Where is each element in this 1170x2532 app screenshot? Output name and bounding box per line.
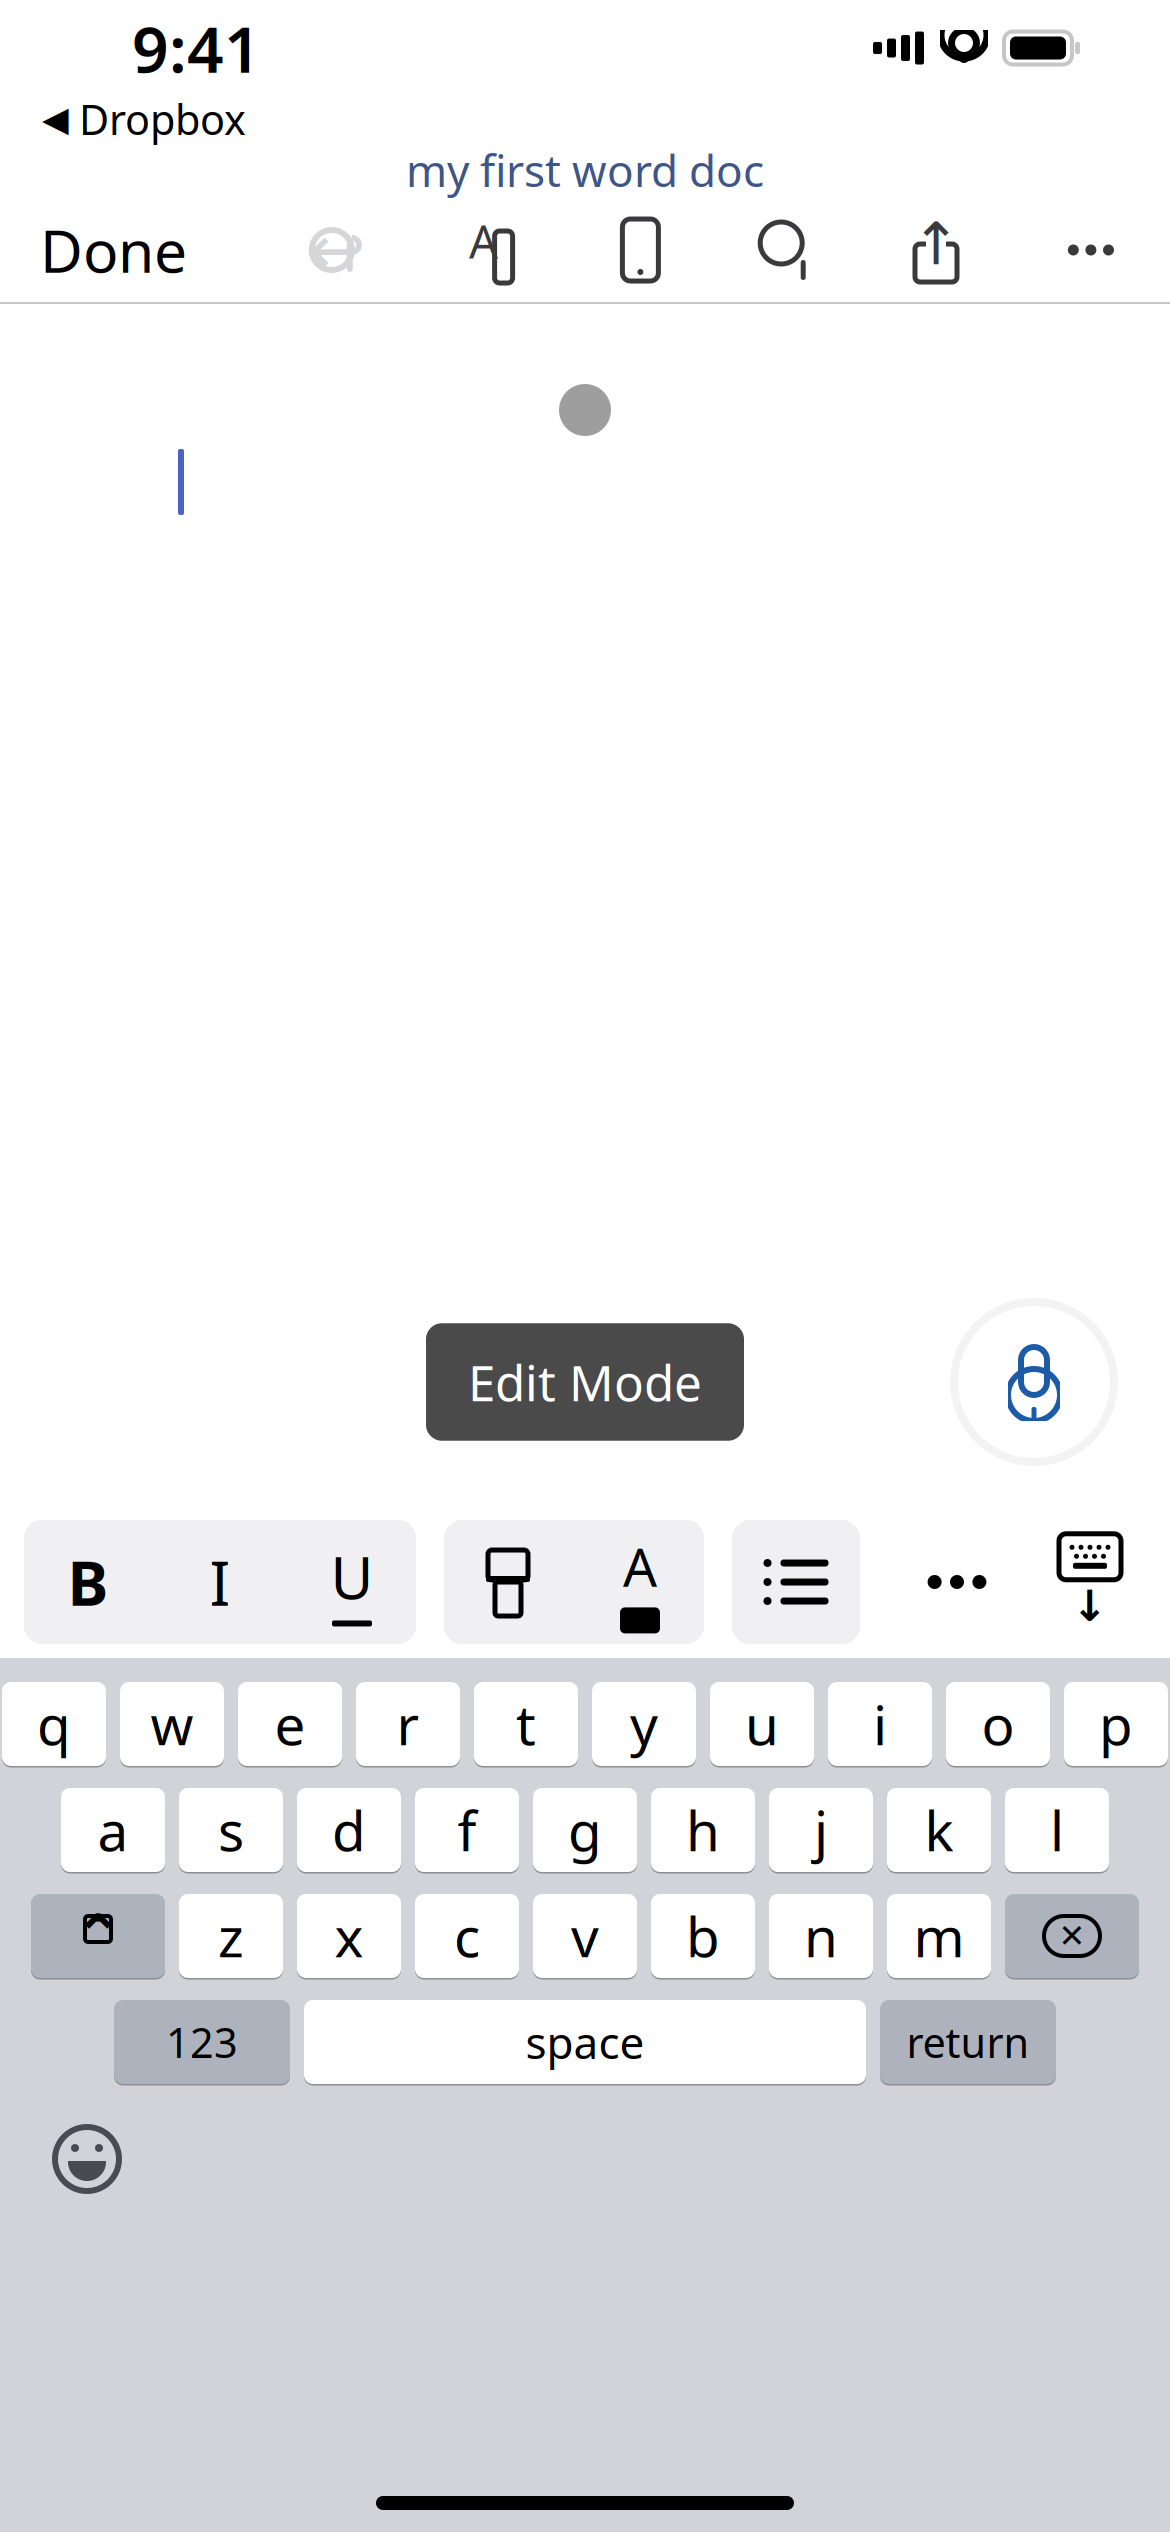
staticText: ✕ xyxy=(1058,1918,1085,1954)
button[interactable]: u xyxy=(710,1680,814,1768)
staticText: return xyxy=(906,2015,1029,2069)
staticText: b xyxy=(686,1900,720,1972)
button[interactable]: Italic xyxy=(156,1520,284,1644)
button[interactable]: return xyxy=(880,1998,1056,2086)
staticText: u xyxy=(745,1688,779,1760)
button[interactable]: Hide keyboard xyxy=(1054,1540,1134,1624)
button[interactable]: i xyxy=(828,1680,932,1768)
button[interactable]: w xyxy=(120,1680,224,1768)
button[interactable]: b xyxy=(651,1892,755,1980)
button[interactable]: o xyxy=(946,1680,1050,1768)
button[interactable]: Shift xyxy=(31,1892,165,1980)
button[interactable]: Delete xyxy=(1005,1892,1139,1980)
staticText: g xyxy=(568,1794,602,1866)
button[interactable]: Done xyxy=(0,193,227,307)
staticText: k xyxy=(924,1794,953,1866)
button[interactable]: y xyxy=(592,1680,696,1768)
staticText: Dropbox xyxy=(79,92,246,146)
staticText: i xyxy=(873,1688,887,1760)
staticText: ◀ xyxy=(42,99,69,139)
staticText: ↑ xyxy=(911,211,960,277)
staticText: c xyxy=(454,1900,480,1972)
staticText: x xyxy=(334,1900,363,1972)
button[interactable]: space xyxy=(304,1998,866,2086)
staticText: h xyxy=(686,1794,720,1866)
button[interactable]: n xyxy=(769,1892,873,1980)
staticText: U xyxy=(330,1537,373,1615)
button[interactable]: Bulleted list xyxy=(732,1520,860,1644)
button[interactable]: r xyxy=(356,1680,460,1768)
button[interactable]: Highlight xyxy=(444,1520,572,1644)
button[interactable]: Search xyxy=(742,218,830,282)
staticText: 123 xyxy=(166,2015,238,2069)
staticText: e xyxy=(274,1688,305,1760)
staticText: ↩ xyxy=(308,211,366,289)
staticText: n xyxy=(804,1900,838,1972)
staticText: j xyxy=(814,1794,828,1866)
staticText: s xyxy=(218,1794,244,1866)
staticText: 9:41 xyxy=(132,5,261,90)
staticText: l xyxy=(1050,1794,1064,1866)
button[interactable]: Mobile view xyxy=(604,216,676,284)
staticText: t xyxy=(516,1688,536,1760)
button[interactable]: Emoji xyxy=(0,2112,122,2206)
button[interactable]: t xyxy=(474,1680,578,1768)
button[interactable]: s xyxy=(179,1786,283,1874)
button[interactable]: p xyxy=(1064,1680,1168,1768)
staticText: d xyxy=(332,1794,366,1866)
button[interactable]: l xyxy=(1005,1786,1109,1874)
staticText: o xyxy=(981,1688,1014,1760)
button[interactable]: a xyxy=(61,1786,165,1874)
button[interactable]: e xyxy=(238,1680,342,1768)
staticText: Edit Mode xyxy=(468,1349,702,1415)
staticText: m xyxy=(913,1900,964,1972)
button[interactable]: c xyxy=(415,1892,519,1980)
staticText: p xyxy=(1099,1688,1133,1760)
staticText: f xyxy=(457,1794,476,1866)
staticText: z xyxy=(218,1900,244,1972)
button[interactable]: q xyxy=(2,1680,106,1768)
staticText: w xyxy=(150,1688,193,1760)
button[interactable]: j xyxy=(769,1786,873,1874)
staticText: r xyxy=(396,1688,419,1760)
staticText: B xyxy=(67,1541,108,1623)
staticText: y xyxy=(630,1688,658,1760)
staticText: v xyxy=(571,1900,599,1972)
button[interactable]: h xyxy=(651,1786,755,1874)
staticText: A xyxy=(469,211,498,271)
staticText: I xyxy=(209,1541,230,1623)
staticText: A xyxy=(623,1531,657,1601)
button[interactable]: More formatting xyxy=(900,1531,1014,1633)
button[interactable]: More xyxy=(1042,218,1140,281)
staticText: a xyxy=(97,1794,128,1866)
button[interactable]: Undo xyxy=(293,220,381,280)
button[interactable]: v xyxy=(533,1892,637,1980)
staticText: q xyxy=(37,1688,71,1760)
button[interactable]: Font color xyxy=(576,1520,704,1644)
staticText: my first word doc xyxy=(406,141,764,199)
staticText: ⌃ xyxy=(73,1903,122,1969)
button[interactable]: ◀ xyxy=(0,88,246,150)
button[interactable]: x xyxy=(297,1892,401,1980)
button[interactable]: z xyxy=(179,1892,283,1980)
button[interactable]: Markup xyxy=(447,218,539,282)
button[interactable]: 123 xyxy=(114,1998,290,2086)
button[interactable]: Bold xyxy=(24,1520,152,1644)
button[interactable]: Dictate xyxy=(946,1294,1122,1470)
button[interactable]: d xyxy=(297,1786,401,1874)
button[interactable]: f xyxy=(415,1786,519,1874)
button[interactable]: Underline xyxy=(288,1520,416,1644)
staticText: ↓ xyxy=(1072,1582,1108,1630)
button[interactable]: Share xyxy=(896,216,976,284)
button[interactable]: k xyxy=(887,1786,991,1874)
button[interactable]: m xyxy=(887,1892,991,1980)
staticText: space xyxy=(525,2013,644,2071)
staticText: Done xyxy=(40,211,187,289)
button[interactable]: g xyxy=(533,1786,637,1874)
